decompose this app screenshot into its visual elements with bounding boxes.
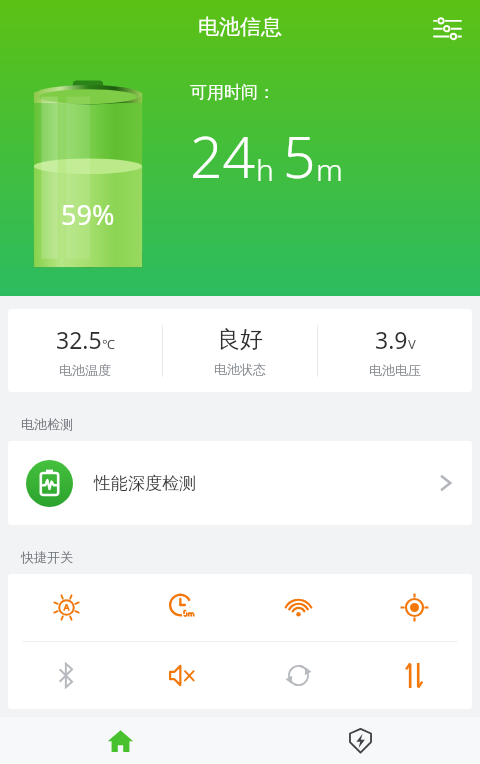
staticText: 良好 <box>217 325 263 354</box>
button[interactable]: Settings <box>424 6 470 52</box>
button[interactable]: 良好 <box>163 309 317 392</box>
button[interactable]: 32.5 <box>8 309 162 392</box>
button[interactable]: Home <box>0 717 240 764</box>
button[interactable]: 3.9 <box>318 309 472 392</box>
button[interactable]: Mobile data <box>356 642 472 709</box>
button[interactable]: Wi-Fi <box>240 574 356 641</box>
staticText: 电池状态 <box>214 361 266 377</box>
staticText: 快捷开关 <box>21 549 73 565</box>
staticText: 5 <box>283 117 316 195</box>
staticText: 可用时间： <box>190 82 275 103</box>
staticText: 32.5 <box>56 324 102 355</box>
button[interactable]: Auto sync <box>240 642 356 709</box>
button[interactable]: Location <box>356 574 472 641</box>
staticText: 电池检测 <box>21 416 73 432</box>
button[interactable]: Mute <box>124 642 240 709</box>
staticText: 3.9 <box>375 324 408 355</box>
staticText: 电池电压 <box>369 362 421 378</box>
staticText: 59% <box>61 196 115 233</box>
staticText: 电池温度 <box>59 362 111 378</box>
staticText: 24 <box>190 117 256 195</box>
staticText: 电池信息 <box>198 14 282 40</box>
button[interactable]: 性能深度检测 <box>8 441 472 525</box>
button[interactable]: Power saver <box>240 717 480 764</box>
staticText: m <box>316 149 343 190</box>
staticText: h <box>256 149 274 190</box>
button[interactable]: Screen timeout 5m <box>124 574 240 641</box>
staticText: ℃ <box>102 335 115 353</box>
button[interactable]: Auto brightness <box>8 574 124 641</box>
button[interactable]: Bluetooth <box>8 642 124 709</box>
staticText: V <box>408 335 416 353</box>
staticText: 性能深度检测 <box>94 473 196 494</box>
